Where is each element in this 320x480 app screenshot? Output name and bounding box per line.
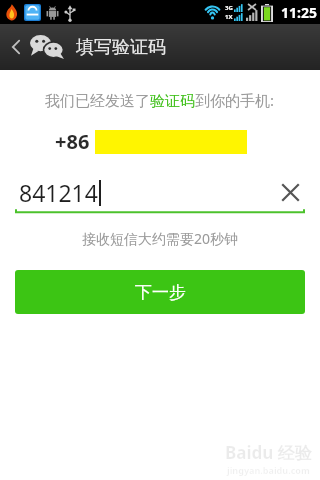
- staticText: 填写验证码: [76, 36, 166, 59]
- staticText: Baidu 经验: [225, 441, 312, 464]
- staticText: 我们已经发送了验证码到你的手机:: [45, 90, 275, 110]
- staticText: 11:25: [281, 3, 317, 22]
- staticText: jingyan.baidu.com: [227, 464, 310, 476]
- button[interactable]: Back: [0, 24, 320, 70]
- staticText: 3G: [225, 4, 233, 12]
- button[interactable]: 841214: [15, 175, 305, 209]
- staticText: +86: [55, 128, 90, 155]
- staticText: 1X: [225, 13, 233, 21]
- button[interactable]: 下一步: [15, 270, 305, 314]
- button[interactable]: Clear: [275, 177, 305, 207]
- staticText: 下一步: [135, 282, 186, 303]
- staticText: 841214: [19, 177, 98, 208]
- staticText: 接收短信大约需要20秒钟: [82, 229, 239, 248]
